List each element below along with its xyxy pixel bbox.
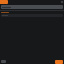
button[interactable]: App title	[0, 0, 8, 4]
button[interactable]: Continue	[55, 60, 63, 64]
button[interactable]	[0, 11, 64, 14]
button[interactable]	[1, 5, 63, 9]
button[interactable]: Cancel	[1, 60, 6, 63]
button[interactable]	[1, 14, 63, 17]
